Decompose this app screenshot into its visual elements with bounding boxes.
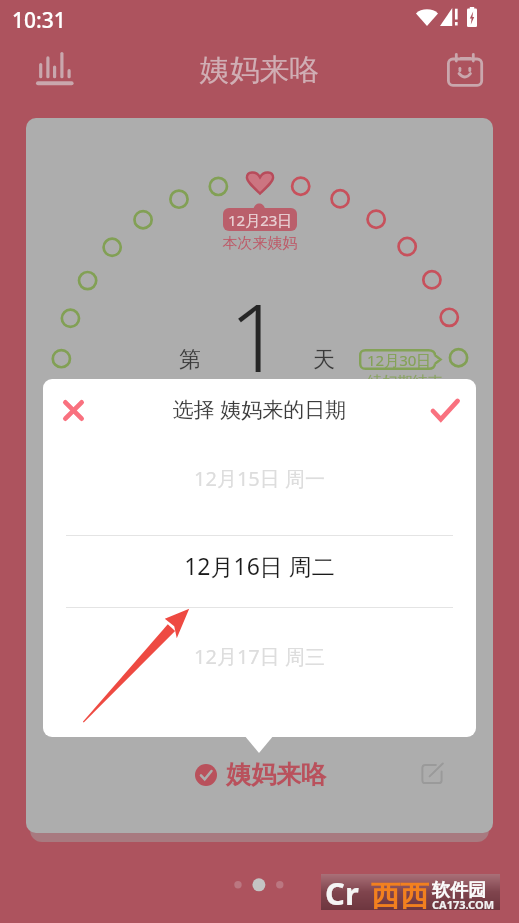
- button[interactable]: Confirm: [421, 387, 469, 435]
- staticText: CA173.COM: [432, 897, 495, 912]
- staticText: 西西: [371, 878, 429, 914]
- staticText: 1: [229, 272, 283, 400]
- staticText: 12月23日: [228, 210, 293, 230]
- staticText: 软件园: [432, 879, 486, 902]
- staticText: 12月30日: [367, 350, 432, 370]
- button[interactable]: Statistics: [31, 45, 79, 93]
- staticText: 续妇期结束: [359, 373, 451, 392]
- button[interactable]: Close: [49, 386, 97, 434]
- staticText: 12月17日 周三: [43, 643, 476, 670]
- staticText: 选择 姨妈来的日期: [43, 395, 476, 424]
- staticText: Cr: [325, 872, 359, 908]
- button[interactable]: Edit: [420, 762, 444, 786]
- staticText: 12月16日 周二: [43, 550, 476, 581]
- button[interactable]: Calendar: [441, 46, 489, 94]
- staticText: 第: [179, 346, 201, 374]
- staticText: 姨妈来咯: [0, 51, 519, 89]
- staticText: 姨妈来咯: [226, 759, 326, 790]
- staticText: 10:31: [12, 6, 66, 35]
- staticText: 本次来姨妈: [190, 234, 330, 253]
- button[interactable]: 姨妈来咯: [195, 759, 362, 790]
- staticText: 天: [313, 346, 335, 374]
- staticText: 12月15日 周一: [43, 465, 476, 492]
